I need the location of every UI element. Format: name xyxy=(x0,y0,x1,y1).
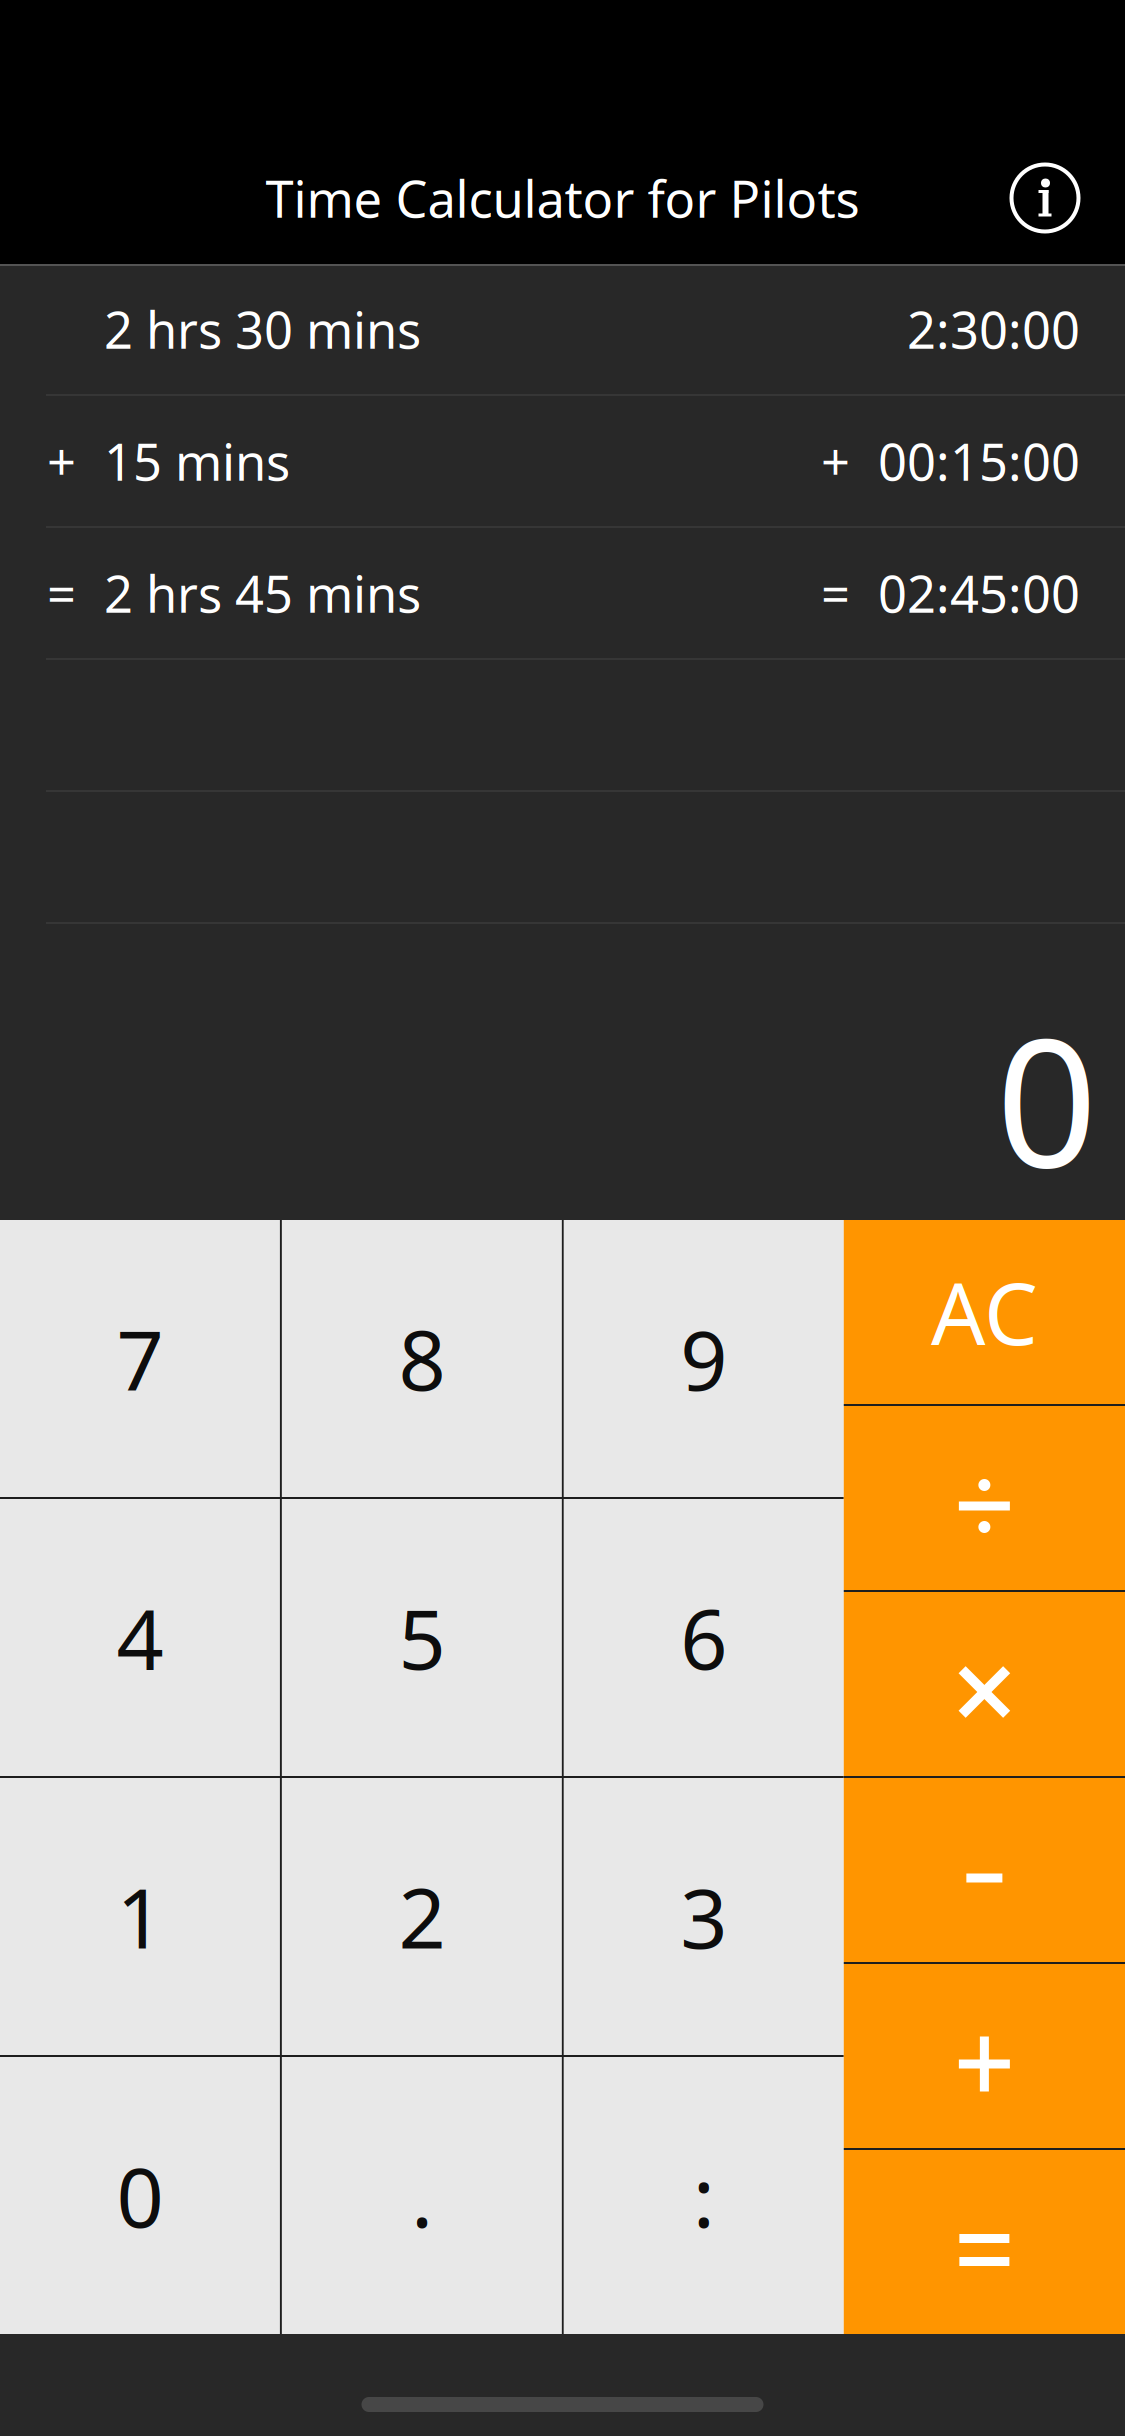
staticText: Time Calculator for Pilots xyxy=(265,164,859,232)
staticText: 8 xyxy=(398,1304,445,1413)
staticText: 6 xyxy=(680,1583,727,1692)
button[interactable]: Add xyxy=(844,1964,1125,2148)
staticText: 7 xyxy=(116,1304,163,1413)
button[interactable]: 4 xyxy=(0,1499,280,1776)
button[interactable]: 1 xyxy=(0,1778,280,2055)
staticText: + xyxy=(821,427,850,495)
staticText: 02:45:00 xyxy=(878,559,1080,627)
staticText: 00:15:00 xyxy=(878,427,1080,495)
button[interactable]: 2 xyxy=(282,1778,562,2055)
button[interactable]: Subtract xyxy=(844,1778,1125,1962)
button[interactable]: Divide xyxy=(844,1406,1125,1590)
staticText: 2 hrs 45 mins xyxy=(104,559,421,627)
staticText: = xyxy=(47,559,76,627)
staticText: 3 xyxy=(680,1862,727,1971)
staticText: 0 xyxy=(996,980,1097,1216)
staticText: 4 xyxy=(116,1583,163,1692)
staticText: = xyxy=(821,559,850,627)
button[interactable]: 3 xyxy=(564,1778,844,2055)
staticText: + xyxy=(47,427,76,495)
staticText: 1 xyxy=(116,1862,163,1971)
staticText: 15 mins xyxy=(104,427,290,495)
button[interactable]: Decimal point xyxy=(282,2057,562,2334)
button[interactable]: 7 xyxy=(0,1220,280,1497)
staticText: 9 xyxy=(680,1304,727,1413)
staticText: : xyxy=(693,2141,715,2250)
staticText: 2 xyxy=(398,1862,445,1971)
button[interactable]: All clear xyxy=(844,1220,1125,1404)
staticText: AC xyxy=(931,1255,1038,1369)
staticText: . xyxy=(411,2141,433,2250)
button[interactable]: Multiply xyxy=(844,1592,1125,1776)
staticText: 2:30:00 xyxy=(907,295,1080,363)
button[interactable]: 8 xyxy=(282,1220,562,1497)
staticText: 2 hrs 30 mins xyxy=(104,295,421,363)
staticText: 5 xyxy=(398,1583,445,1692)
button[interactable]: 9 xyxy=(564,1220,844,1497)
button[interactable]: Info xyxy=(979,132,1111,264)
staticText: 0 xyxy=(116,2141,163,2250)
button[interactable]: 6 xyxy=(564,1499,844,1776)
button[interactable]: 5 xyxy=(282,1499,562,1776)
button[interactable]: 0 xyxy=(0,2057,280,2334)
button[interactable]: Equals xyxy=(844,2150,1125,2334)
button[interactable]: Colon xyxy=(564,2057,844,2334)
